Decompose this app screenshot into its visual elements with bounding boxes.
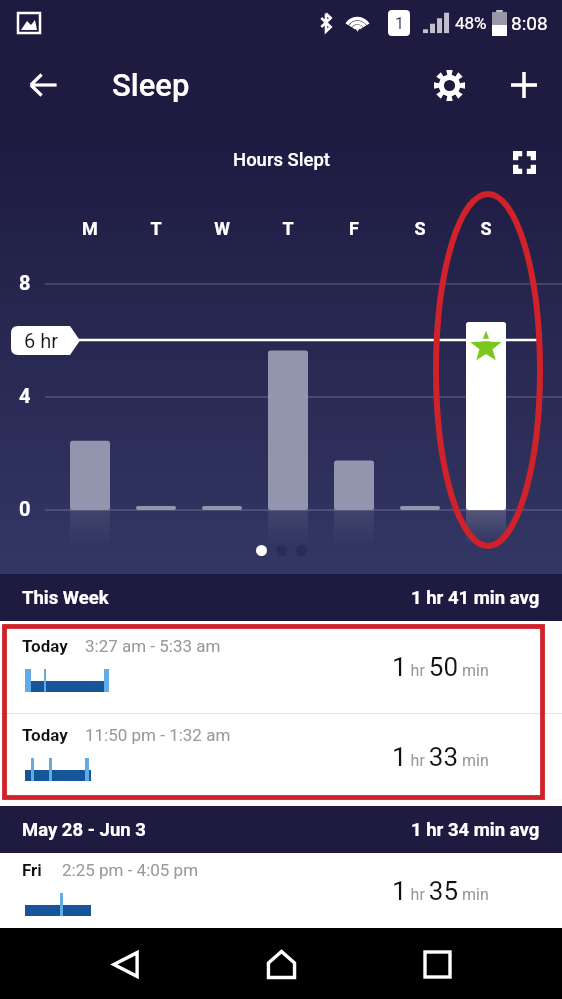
staticText: Hours Slept [233, 149, 330, 171]
staticText: 1 hr 41 min avg [411, 587, 540, 609]
staticText: T [276, 218, 300, 239]
button[interactable]: Fullscreen [501, 139, 548, 186]
staticText: S [474, 218, 498, 239]
staticText: This Week [22, 587, 109, 609]
button[interactable]: Fri [0, 853, 562, 928]
staticText: 4 [19, 384, 31, 407]
staticText: 11:50 pm - 1:32 am [85, 725, 231, 745]
button[interactable]: Back [20, 61, 68, 109]
button[interactable]: Today [0, 621, 562, 713]
staticText: Fri [22, 860, 42, 880]
staticText: Sleep [112, 67, 190, 103]
staticText: 1 [395, 14, 404, 33]
button[interactable]: Today [0, 714, 562, 799]
staticText: M [78, 218, 102, 239]
staticText: 8:08 [511, 12, 548, 34]
staticText: 1 hr 34 min avg [411, 819, 540, 841]
staticText: 2:25 pm - 4:05 pm [62, 860, 199, 880]
staticText: S [408, 218, 432, 239]
staticText: T [144, 218, 168, 239]
staticText: 8 [19, 271, 31, 294]
staticText: 6 hr [24, 329, 58, 352]
staticText: 48% [455, 13, 487, 33]
button[interactable]: Settings [423, 59, 475, 111]
button[interactable]: Recents [411, 938, 463, 990]
staticText: 1 hr 33 min [392, 742, 489, 772]
button[interactable]: Back [99, 938, 151, 990]
staticText: Today [22, 725, 68, 745]
button[interactable]: Add [498, 59, 550, 111]
staticText: 0 [19, 497, 31, 520]
button[interactable]: Home [255, 938, 307, 990]
staticText: May 28 - Jun 3 [22, 819, 146, 841]
staticText: Today [22, 636, 68, 656]
staticText: W [210, 218, 234, 239]
staticText: 3:27 am - 5:33 am [85, 636, 221, 656]
staticText: 1 hr 35 min [392, 876, 489, 906]
staticText: 1 hr 50 min [392, 652, 489, 682]
staticText: F [342, 218, 366, 239]
